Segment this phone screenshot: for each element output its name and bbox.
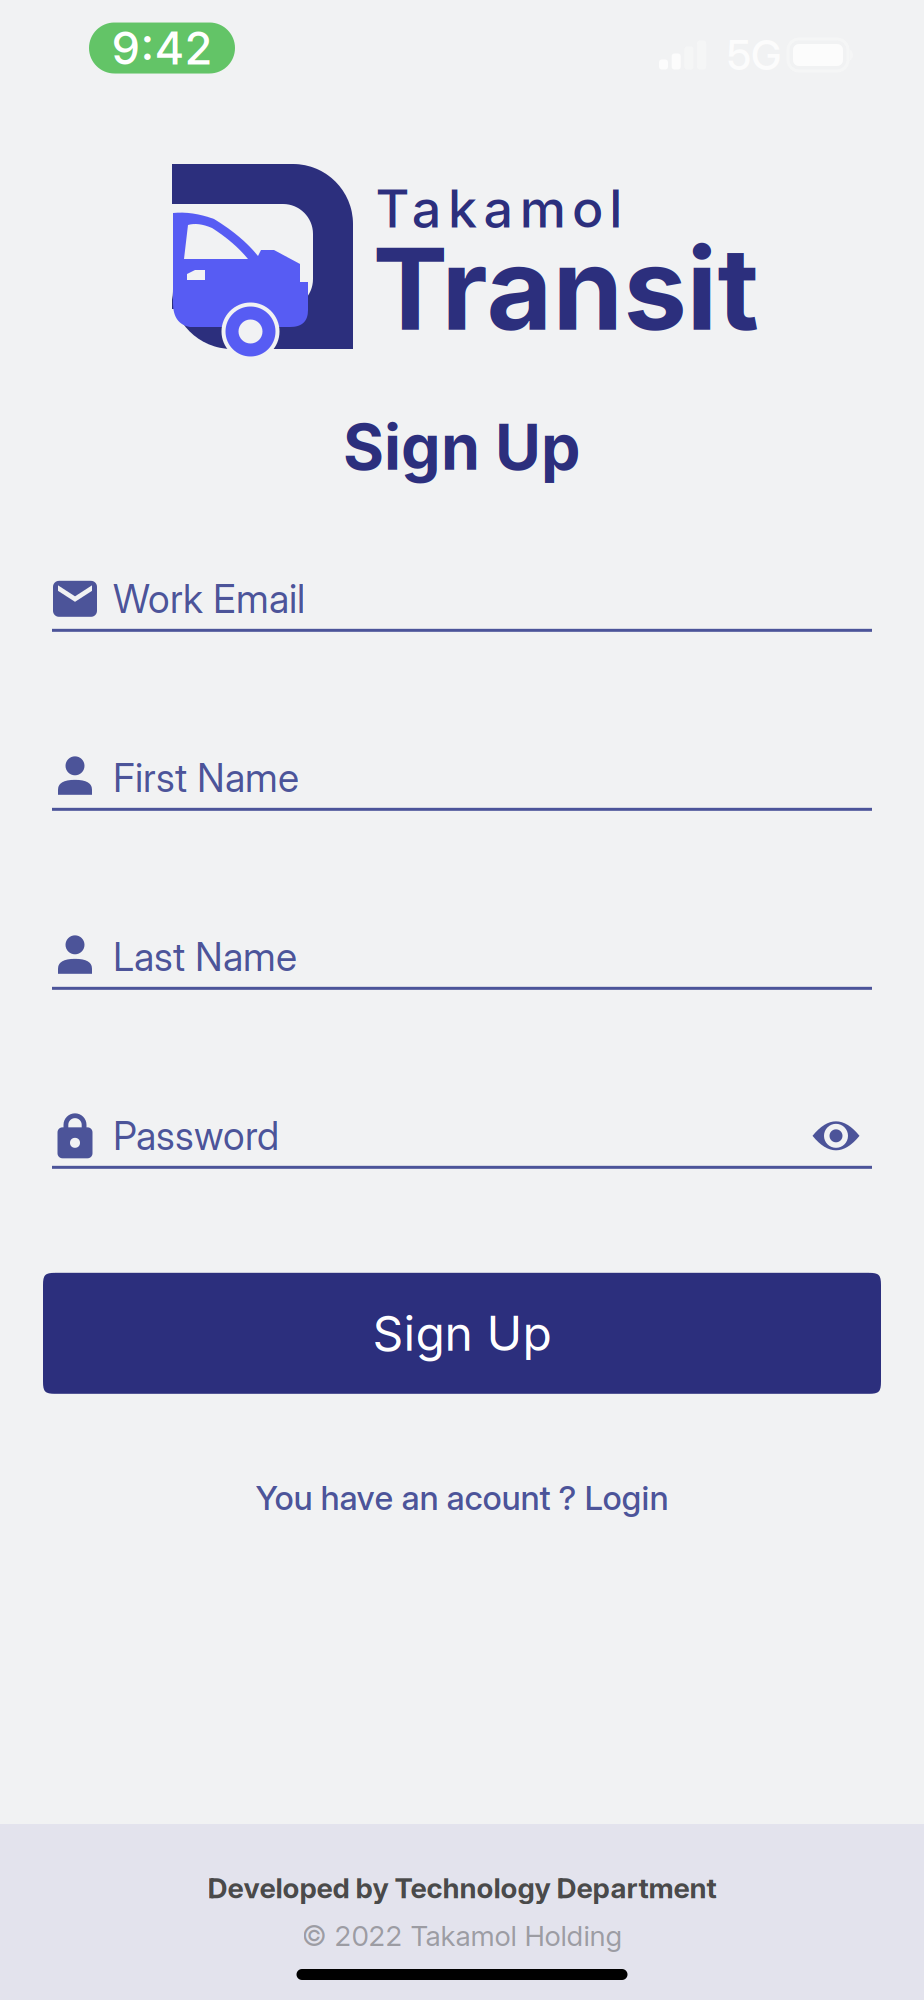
staticText: Takamol bbox=[375, 177, 622, 240]
staticText: First Name bbox=[113, 754, 299, 801]
staticText: Transit bbox=[372, 220, 759, 357]
staticText: Last Name bbox=[113, 933, 297, 980]
staticText: You have an acount ? Login bbox=[255, 1478, 668, 1518]
staticText: Sign Up bbox=[372, 1304, 551, 1362]
staticText: 5G bbox=[727, 30, 781, 80]
button[interactable]: You have an acount ? Login bbox=[243, 1466, 680, 1530]
button[interactable]: Sign Up bbox=[43, 1273, 881, 1394]
button[interactable]: Show password bbox=[800, 1113, 872, 1159]
staticText: © 2022 Takamol Holding bbox=[301, 1919, 622, 1953]
staticText: Developed by Technology Department bbox=[207, 1871, 716, 1905]
staticText: Work Email bbox=[113, 575, 305, 622]
staticText: 9:42 bbox=[111, 21, 212, 75]
staticText: Password bbox=[113, 1112, 279, 1159]
staticText: Sign Up bbox=[343, 409, 581, 485]
